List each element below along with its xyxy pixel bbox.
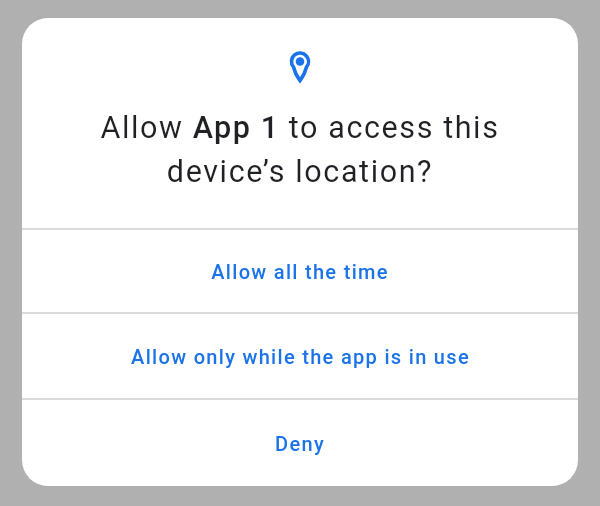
staticText: Allow App 1 to access this device’s loca… xyxy=(22,110,578,189)
staticText: Allow only while the app is in use xyxy=(131,345,470,368)
button[interactable]: Allow only while the app is in use xyxy=(22,314,578,398)
button[interactable]: Deny xyxy=(22,400,578,486)
staticText: Allow all the time xyxy=(211,260,389,283)
staticText: Deny xyxy=(275,432,325,455)
button[interactable]: Allow all the time xyxy=(22,230,578,312)
